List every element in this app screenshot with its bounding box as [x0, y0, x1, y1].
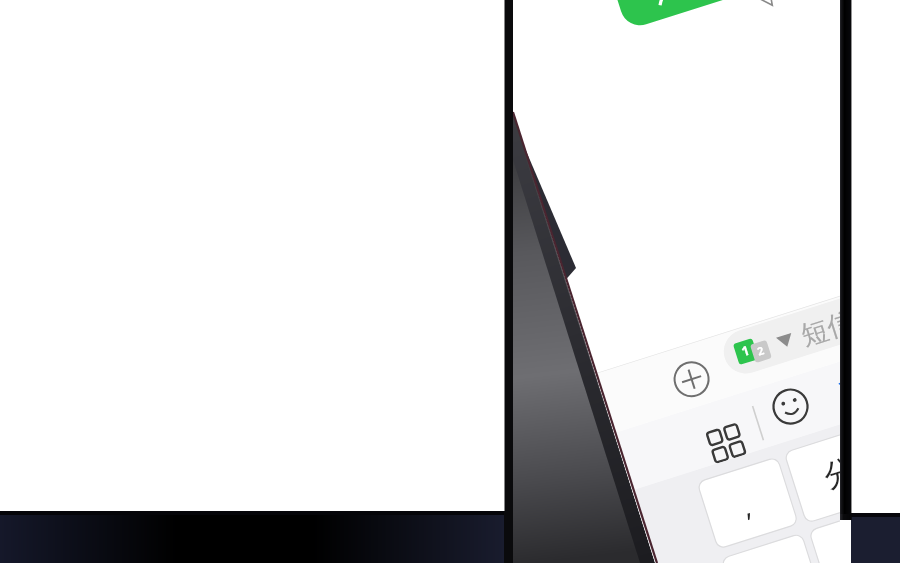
button[interactable]: Phone mockup	[0, 0, 900, 563]
